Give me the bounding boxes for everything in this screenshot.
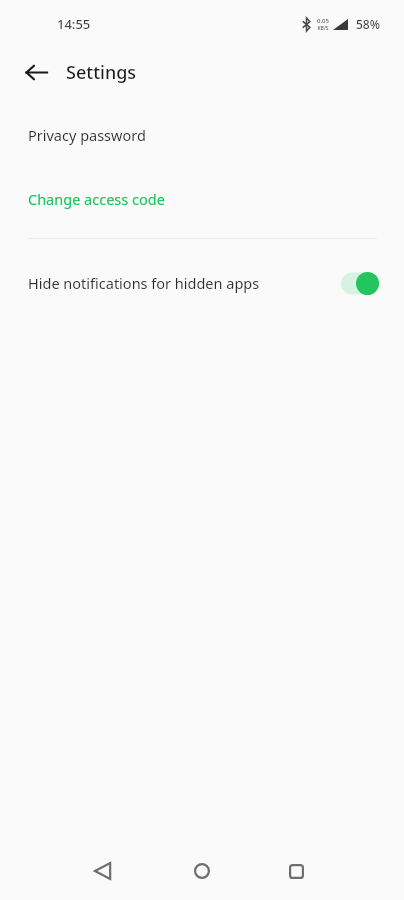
staticText: 58% [356,16,380,32]
staticText: 14:55 [57,15,91,33]
staticText: KB/S [317,25,329,32]
staticText: Hide notifications for hidden apps [28,273,260,293]
staticText: Settings [66,60,137,85]
button[interactable]: Hide notifications for hidden apps toggl… [341,272,379,295]
button[interactable]: Home [178,847,226,895]
staticText: 0.05 [317,17,329,25]
button[interactable]: Back [78,847,126,895]
button[interactable]: Privacy password [0,120,404,150]
button[interactable]: Change access code [0,185,404,213]
staticText: Change access code [28,189,165,209]
button[interactable]: Hide notifications for hidden apps [0,260,404,306]
button[interactable]: Recent apps [272,847,320,895]
button[interactable]: Back [18,54,54,90]
staticText: Privacy password [28,125,146,145]
